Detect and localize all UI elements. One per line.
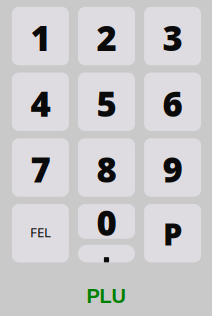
staticText: P xyxy=(163,213,182,255)
button[interactable]: 9 xyxy=(144,138,201,197)
button[interactable]: 1 xyxy=(12,7,69,65)
staticText: FEL xyxy=(30,223,51,241)
staticText: 8 xyxy=(96,145,116,193)
staticText: 2 xyxy=(96,14,116,61)
staticText: 7 xyxy=(30,145,50,193)
button[interactable]: 4 xyxy=(12,73,69,131)
staticText: 0 xyxy=(96,199,116,246)
staticText: 3 xyxy=(163,14,183,61)
staticText: 6 xyxy=(163,80,183,127)
staticText: 5 xyxy=(96,80,116,127)
button[interactable]: 5 xyxy=(78,73,135,131)
button[interactable]: P xyxy=(144,204,201,262)
staticText: 4 xyxy=(30,80,50,127)
button[interactable]: 2 xyxy=(78,7,135,65)
button[interactable]: PLU xyxy=(64,283,148,309)
button[interactable]: 8 xyxy=(78,138,135,197)
staticText: PLU xyxy=(86,285,125,307)
button[interactable]: Decimal point xyxy=(78,245,135,262)
button[interactable]: 7 xyxy=(12,138,69,197)
button[interactable]: 6 xyxy=(144,73,201,131)
button[interactable]: 3 xyxy=(144,7,201,65)
button[interactable]: 0 xyxy=(78,204,135,239)
staticText: 1 xyxy=(30,14,50,61)
staticText: 9 xyxy=(163,145,183,193)
button[interactable]: FEL xyxy=(12,204,69,262)
